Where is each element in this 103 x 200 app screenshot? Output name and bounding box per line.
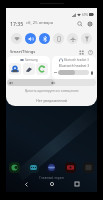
button[interactable]: Громкость <box>58 70 89 75</box>
button[interactable]: Телефон <box>9 162 20 173</box>
button[interactable]: Звук <box>25 33 36 44</box>
button[interactable]: Сообщения <box>28 162 39 173</box>
button[interactable]: Bluetooth headset 3 <box>52 56 96 79</box>
button[interactable]: Фонарик <box>81 33 92 44</box>
button[interactable]: Режим полёта <box>67 33 78 44</box>
button[interactable]: Галерея <box>83 162 94 173</box>
staticText: Яркость адаптируется к освещению <box>6 89 97 93</box>
button[interactable]: Настройки <box>85 19 94 28</box>
staticText: 17:35 <box>10 20 24 27</box>
button[interactable]: Wi-Fi <box>11 33 22 44</box>
staticText: Нет уведомлений <box>6 98 97 103</box>
staticText: Bluetooth headset 3 <box>64 58 89 62</box>
button[interactable]: Samsung <box>7 56 50 79</box>
staticText: сб, 25 января <box>26 20 54 26</box>
button[interactable]: Устройство 0 <box>9 63 21 75</box>
staticText: Samsung <box>25 58 38 62</box>
button[interactable]: Автоповорот <box>53 33 64 44</box>
button[interactable]: Устройства <box>78 49 85 56</box>
staticText: 69% <box>82 13 88 17</box>
button[interactable]: Ещё <box>87 49 94 56</box>
button[interactable]: Главный экран <box>46 178 58 190</box>
staticText: Bluetooth headset 3 <box>54 64 94 68</box>
button[interactable]: Яркость <box>7 79 96 86</box>
staticText: SmartThings <box>10 49 36 55</box>
button[interactable]: Последние приложения <box>71 178 83 190</box>
button[interactable]: Интернет <box>46 162 57 173</box>
button[interactable]: Назад <box>20 178 32 190</box>
button[interactable]: Устройство 1 <box>23 63 35 75</box>
button[interactable]: YouTube <box>65 162 76 173</box>
staticText: Главный экран <box>6 175 97 180</box>
button[interactable]: Поиск <box>75 19 84 28</box>
button[interactable]: Устройство 2 <box>36 63 48 75</box>
button[interactable]: Bluetooth <box>39 33 50 44</box>
